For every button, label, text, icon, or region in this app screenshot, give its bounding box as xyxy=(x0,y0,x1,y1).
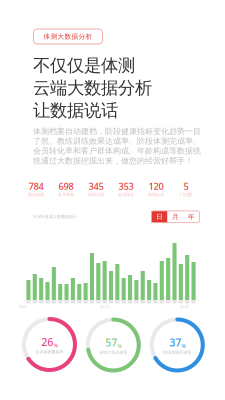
staticText: 让数据说话 xyxy=(33,100,118,121)
staticText: 云端大数据分析 xyxy=(33,77,152,99)
staticText: 新增会员 xyxy=(148,192,164,197)
staticText: 会员转化 xyxy=(118,192,134,197)
staticText: 日 xyxy=(156,213,163,221)
staticText: % xyxy=(54,342,58,349)
staticText: 了然。教练训练效果达成率、阶段体测完成率、 xyxy=(33,136,201,146)
staticText: 345 xyxy=(88,180,103,192)
staticText: 37 xyxy=(169,335,181,349)
button[interactable]: 日 xyxy=(151,211,167,223)
staticText: 月 xyxy=(172,213,179,221)
staticText: 04-30 xyxy=(179,304,188,309)
staticText: 120 xyxy=(148,180,163,192)
staticText: 会员转化率和客户群体构成、年龄构成等数据统 xyxy=(33,146,201,156)
staticText: 训练达成 xyxy=(88,192,104,197)
staticText: 不仅仅是体测 xyxy=(33,55,135,76)
staticText: 353 xyxy=(118,180,133,192)
button[interactable]: 月 xyxy=(167,211,183,223)
staticText: 784 xyxy=(28,180,43,192)
staticText: 04-01 xyxy=(18,304,27,309)
staticText: % xyxy=(117,342,121,349)
staticText: 体测大数据分析 xyxy=(43,32,92,41)
staticText: 26 xyxy=(41,335,53,349)
staticText: 本月体测 xyxy=(58,192,74,197)
staticText: 5 xyxy=(183,180,188,192)
button[interactable]: 年 xyxy=(183,211,199,223)
staticText: 体测档案自动建档，阶段健康指标变化趋势一目 xyxy=(33,126,201,136)
staticText: 统通过大数据挖掘出来，做您的经营好帮手！ xyxy=(33,156,193,166)
staticText: 近30天体测人数数据统计 xyxy=(33,214,77,219)
staticText: 阶段体测完成率 xyxy=(163,350,191,355)
button[interactable]: 体测大数据分析 xyxy=(33,29,102,44)
staticText: 累计体测 xyxy=(28,192,44,197)
staticText: 门店数 xyxy=(180,192,192,197)
staticText: 会员体测覆盖率 xyxy=(35,349,63,354)
staticText: 训练计划达成率 xyxy=(99,350,127,355)
staticText: 57 xyxy=(105,335,117,349)
staticText: 年 xyxy=(188,213,195,221)
staticText: 04-15 xyxy=(99,304,108,309)
staticText: % xyxy=(181,342,185,349)
staticText: 698 xyxy=(58,180,73,192)
